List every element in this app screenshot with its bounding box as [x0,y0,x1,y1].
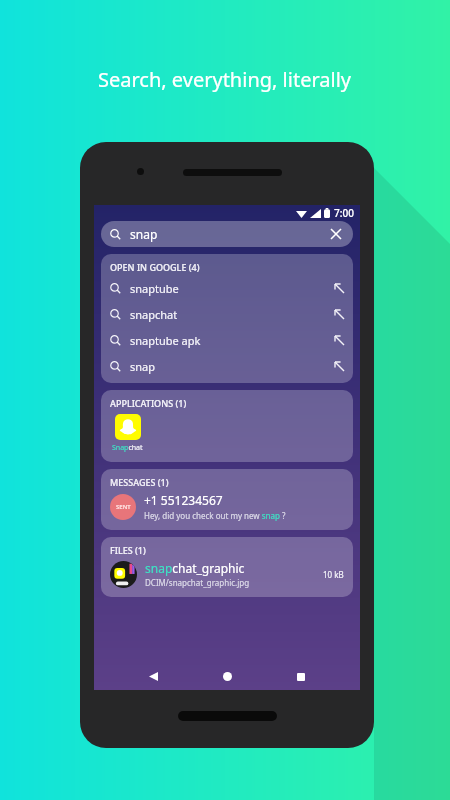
staticText: snaptube apk [130,333,201,348]
staticText: 7:00 [334,206,354,220]
staticText: Hey, did you check out my new snap ? [144,510,286,521]
staticText: SENT [116,503,131,511]
staticText: snap [130,359,156,374]
button[interactable]: snapchat [101,301,353,327]
button[interactable]: Clear search [328,226,344,242]
button[interactable]: Snapchat [115,414,141,440]
button[interactable]: SENT [101,490,353,530]
staticText: MESSAGES (1) [110,476,169,488]
button[interactable]: snap [101,221,353,247]
staticText: APPLICATIONS (1) [110,397,187,409]
button[interactable]: Back [138,663,168,690]
button[interactable]: snap [101,353,353,379]
button[interactable]: Home [212,663,242,690]
staticText: snap [130,226,158,242]
button[interactable]: snaptube [101,275,353,301]
button[interactable]: snapchat_graphic [101,558,353,597]
staticText: Search, everything, literally [98,66,352,93]
staticText: DCIM/snapchat_graphic.jpg [145,577,250,588]
staticText: snapchat [130,307,178,322]
staticText: +1 551234567 [144,492,223,508]
button[interactable]: Recent apps [286,663,316,690]
staticText: snaptube [130,281,179,296]
staticText: OPEN IN GOOGLE (4) [110,261,200,273]
staticText: 10 kB [323,569,344,580]
button[interactable]: snaptube apk [101,327,353,353]
staticText: Snapchat [112,443,143,453]
staticText: FILES (1) [110,544,146,556]
staticText: snapchat_graphic [145,560,245,576]
